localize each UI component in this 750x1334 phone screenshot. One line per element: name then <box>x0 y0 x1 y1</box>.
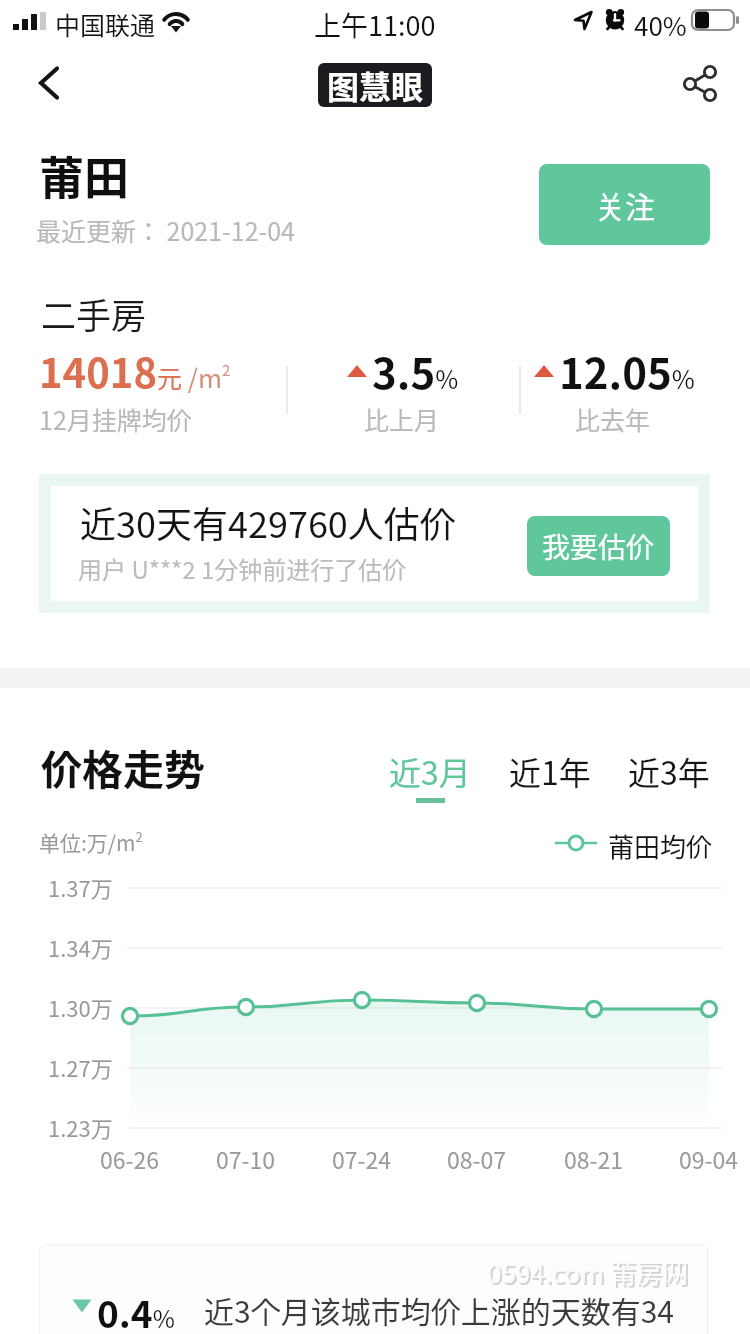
staticText: 近3个月该城市均价上涨的天数有34 <box>204 1288 674 1331</box>
button[interactable]: 近3月 <box>389 748 471 803</box>
staticText: 40% <box>634 6 687 44</box>
staticText: 0594.com 莆房网 <box>489 1255 690 1293</box>
staticText: 莆田 <box>39 143 130 208</box>
staticText: 1.30万 <box>48 991 113 1023</box>
staticText: 1.27万 <box>48 1051 113 1083</box>
button[interactable]: 近3年 <box>628 748 710 794</box>
staticText: 0594.com 莆房网 <box>487 1253 688 1291</box>
button[interactable]: Share <box>670 53 730 113</box>
staticText: 3.5% <box>372 340 459 401</box>
staticText: 近1年 <box>509 748 591 794</box>
staticText: 我要估价 <box>542 526 655 567</box>
staticText: 上午11:00 <box>314 5 436 44</box>
staticText: 价格走势 <box>41 737 205 796</box>
button[interactable]: 我要估价 <box>527 516 670 576</box>
staticText: 近30天有429760人估价 <box>80 496 456 548</box>
staticText: 中国联通 <box>55 6 156 42</box>
staticText: 08-07 <box>447 1142 507 1175</box>
button[interactable]: 近1年 <box>509 748 591 794</box>
staticText: 比去年 <box>575 401 651 437</box>
staticText: 12月挂牌均价 <box>39 401 192 437</box>
button[interactable]: 0594.com 莆房网 <box>39 1244 708 1334</box>
staticText: 比上月 <box>364 401 440 437</box>
staticText: 0.4% <box>97 1285 175 1334</box>
button[interactable]: 近30天有429760人估价 <box>51 486 698 601</box>
staticText: 06-26 <box>100 1142 160 1175</box>
staticText: 09-04 <box>679 1142 739 1175</box>
staticText: 单位:万/m2 <box>39 827 143 857</box>
button[interactable]: 关注 <box>539 164 710 245</box>
staticText: 近3月 <box>389 748 471 794</box>
button[interactable]: 图慧眼 <box>318 63 432 107</box>
staticText: 1.34万 <box>48 931 113 963</box>
staticText: 07-10 <box>216 1142 276 1175</box>
staticText: 用户 U***2 1分钟前进行了估价 <box>78 551 407 586</box>
staticText: 07-24 <box>332 1142 392 1175</box>
staticText: 关注 <box>595 183 655 226</box>
staticText: 莆田均价 <box>608 827 713 865</box>
staticText: 二手房 <box>41 288 147 339</box>
staticText: 图慧眼 <box>327 63 424 106</box>
staticText: 最近更新： 2021-12-04 <box>36 212 295 248</box>
staticText: 1.23万 <box>48 1111 113 1143</box>
staticText: 12.05% <box>559 340 695 401</box>
staticText: 近3年 <box>628 748 710 794</box>
staticText: 14018元 /m2 <box>39 342 231 400</box>
button[interactable]: Back <box>20 53 80 113</box>
staticText: 08-21 <box>564 1142 624 1175</box>
staticText: 1.37万 <box>48 871 113 903</box>
